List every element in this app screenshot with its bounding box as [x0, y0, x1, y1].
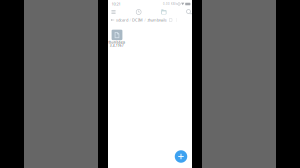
staticText: / [144, 17, 145, 23]
staticText: sdcard [116, 17, 128, 23]
button[interactable]: Folders [158, 8, 169, 16]
staticText: thumbdata [108, 41, 125, 44]
button[interactable]: More options [174, 16, 178, 23]
button[interactable]: Search [183, 8, 194, 16]
staticText: 3-4-1967 [110, 44, 124, 47]
button[interactable]: Recent [133, 8, 144, 16]
button[interactable]: Menu [108, 8, 119, 16]
button[interactable]: Add [172, 148, 189, 165]
button[interactable]: Back [110, 17, 115, 22]
staticText: 10:21 [111, 1, 120, 7]
staticText: 0.00 KB/s [163, 2, 177, 6]
staticText: .thumbnails [147, 17, 167, 23]
button[interactable]: View mode [168, 16, 173, 23]
staticText: DCIM [132, 17, 143, 23]
button[interactable]: thumbdata [105, 29, 129, 48]
